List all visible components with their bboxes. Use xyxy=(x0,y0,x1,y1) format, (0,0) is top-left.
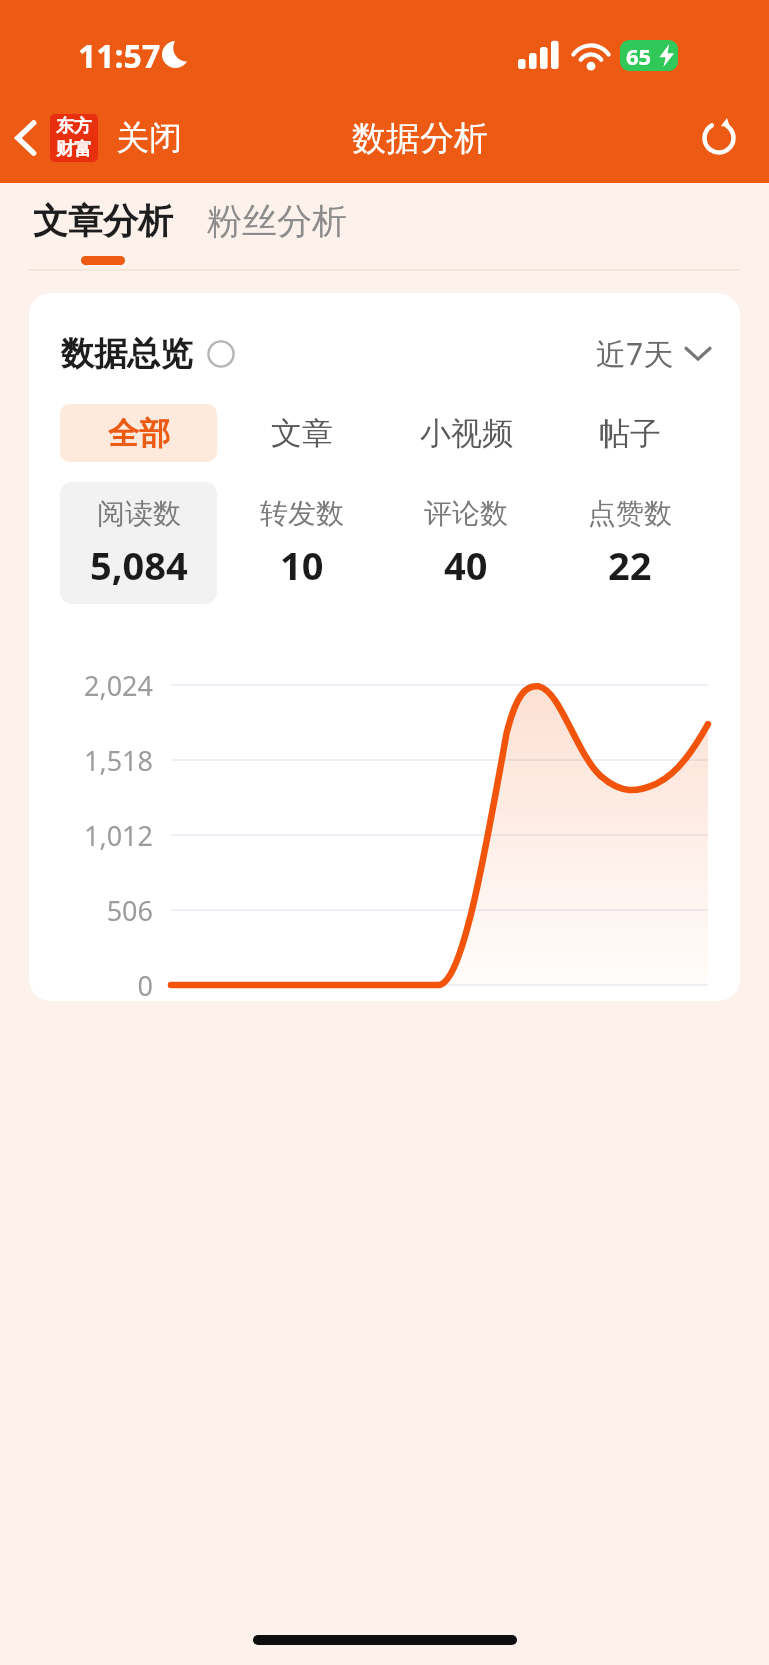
staticText: 粉丝分析 xyxy=(207,199,347,243)
staticText: 1,518 xyxy=(29,742,153,779)
staticText: 东方 xyxy=(56,115,92,138)
button[interactable]: 说明 xyxy=(205,338,237,370)
staticText: 关闭 xyxy=(116,117,182,159)
button[interactable]: 小视频 xyxy=(387,404,545,462)
staticText: 1,012 xyxy=(29,817,153,854)
staticText: 阅读数 xyxy=(97,496,181,531)
staticText: 数据总览 xyxy=(61,333,193,375)
staticText: 65 xyxy=(626,41,652,71)
staticText: 近7天 xyxy=(596,333,674,374)
button[interactable]: 点赞数 xyxy=(551,482,709,604)
button[interactable]: 转发数 xyxy=(223,482,381,604)
staticText: 转发数 xyxy=(260,496,344,531)
staticText: 506 xyxy=(29,892,153,929)
staticText: 2,024 xyxy=(29,667,153,704)
staticText: 点赞数 xyxy=(588,496,672,531)
button[interactable]: 文章分析 xyxy=(29,195,177,247)
staticText: 财富 xyxy=(56,138,92,161)
staticText: 11:57 xyxy=(78,34,161,78)
staticText: 数据分析 xyxy=(352,117,488,160)
button[interactable]: 刷新 xyxy=(691,110,747,166)
button[interactable]: 全部 xyxy=(60,404,217,462)
button[interactable]: 返回 xyxy=(0,104,102,172)
button[interactable]: 阅读数 xyxy=(60,482,217,604)
button[interactable]: 帖子 xyxy=(551,404,709,462)
button[interactable]: 评论数 xyxy=(387,482,545,604)
staticText: 文章 xyxy=(271,414,333,453)
button[interactable]: 关闭 xyxy=(102,105,196,171)
staticText: 小视频 xyxy=(420,414,513,453)
staticText: 全部 xyxy=(108,414,170,453)
button[interactable]: 粉丝分析 xyxy=(203,195,351,247)
staticText: 10 xyxy=(280,539,324,591)
staticText: 5,084 xyxy=(90,539,188,591)
staticText: 0 xyxy=(29,967,153,1001)
staticText: 帖子 xyxy=(599,414,661,453)
staticText: 40 xyxy=(444,539,488,591)
button[interactable]: 近7天 xyxy=(592,327,714,380)
staticText: 文章分析 xyxy=(33,199,173,243)
button[interactable]: 文章 xyxy=(223,404,381,462)
staticText: 22 xyxy=(608,539,652,591)
staticText: 评论数 xyxy=(424,496,508,531)
